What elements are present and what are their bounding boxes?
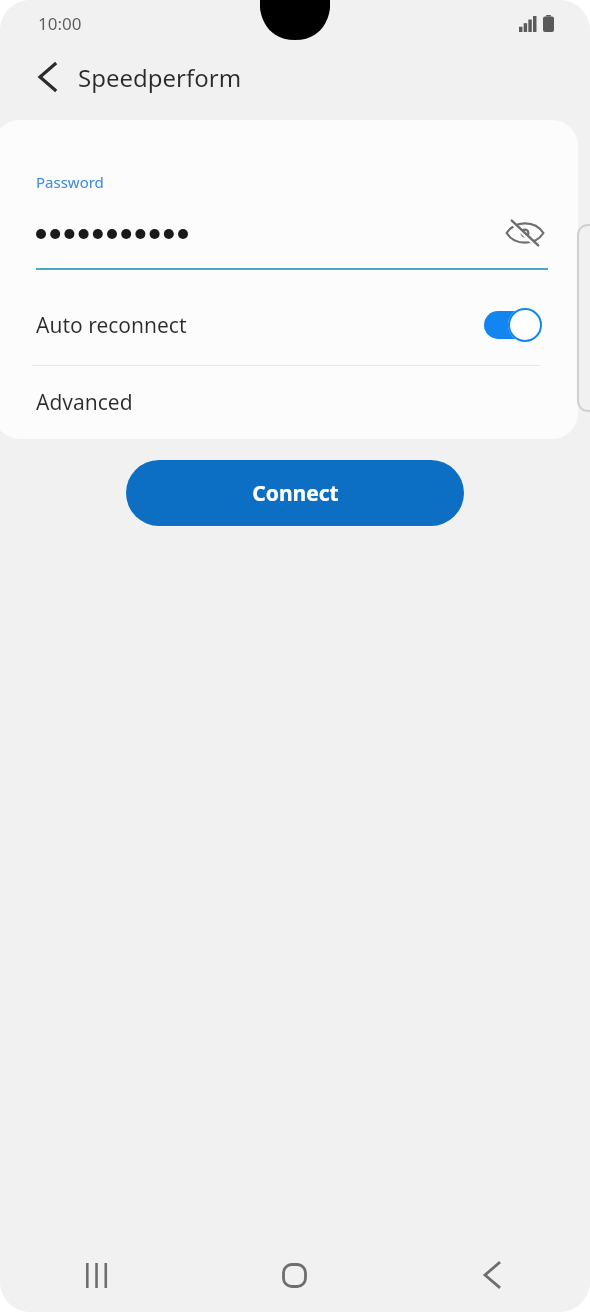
staticText: Connect xyxy=(252,479,339,508)
button[interactable]: Recents xyxy=(0,1238,196,1312)
button[interactable]: Auto reconnect toggle xyxy=(484,308,542,342)
button[interactable]: Advanced xyxy=(0,366,578,439)
staticText: 10:00 xyxy=(38,12,82,35)
staticText: Speedperform xyxy=(78,61,242,94)
staticText: Advanced xyxy=(36,388,133,417)
button[interactable]: Auto reconnect xyxy=(0,285,578,365)
button[interactable]: Back xyxy=(24,54,70,100)
button[interactable]: Back xyxy=(393,1238,590,1312)
staticText: Auto reconnect xyxy=(36,311,484,340)
button[interactable]: Show password xyxy=(502,210,548,256)
button[interactable]: Home xyxy=(196,1238,393,1312)
staticText: Password xyxy=(36,172,104,192)
button[interactable]: Password xyxy=(0,120,578,285)
button[interactable]: Connect xyxy=(126,460,464,526)
